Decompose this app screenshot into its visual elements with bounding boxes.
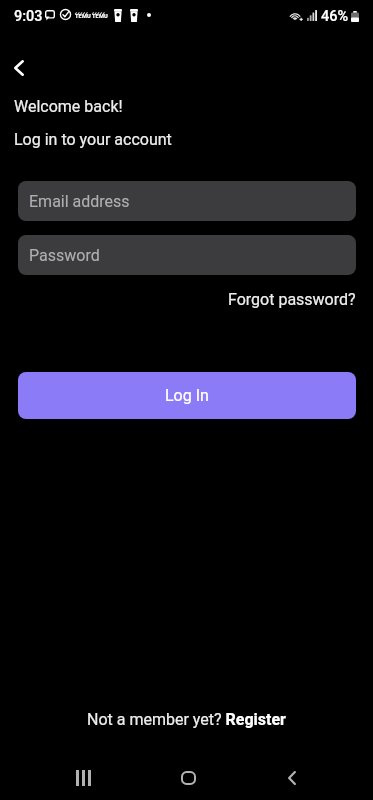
staticText: Password	[29, 246, 100, 265]
button[interactable]: Recent apps	[59, 754, 107, 800]
staticText: Welcome back!	[14, 97, 123, 116]
button[interactable]: Back	[268, 754, 316, 800]
button[interactable]: Not a member yet? Register	[77, 704, 296, 735]
button[interactable]: Password	[18, 235, 356, 275]
button[interactable]: Forgot password?	[220, 284, 364, 315]
staticText: Not a member yet? Register	[87, 710, 286, 729]
staticText: Log In	[165, 386, 209, 405]
staticText: 46%	[321, 8, 349, 25]
staticText: 9:03	[14, 8, 43, 25]
staticText: TEMU	[75, 13, 91, 20]
button[interactable]: Back	[0, 48, 39, 88]
button[interactable]: Log In	[18, 372, 356, 419]
staticText: TEMU	[92, 13, 108, 20]
staticText: Forgot password?	[228, 290, 356, 309]
button[interactable]: Email address	[18, 181, 356, 221]
staticText: Email address	[29, 192, 130, 211]
button[interactable]: Home	[164, 754, 212, 800]
staticText: Log in to your account	[14, 130, 172, 149]
